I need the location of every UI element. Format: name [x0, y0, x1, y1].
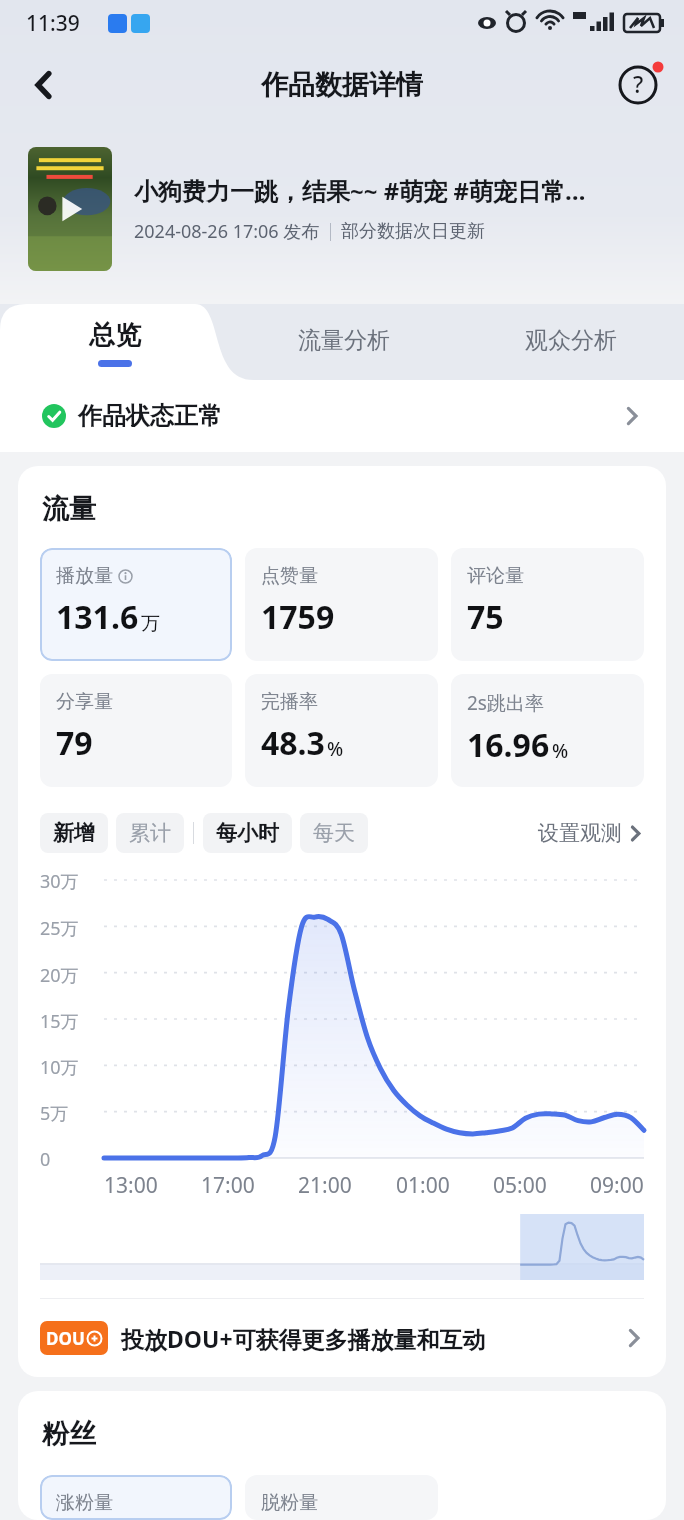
staticText: %	[327, 736, 344, 762]
staticText: 48.3	[261, 721, 325, 765]
staticText: 粉丝	[42, 1417, 96, 1451]
staticText: 21:00	[298, 1171, 352, 1200]
staticText: 设置观测	[538, 820, 622, 846]
button[interactable]: Back	[16, 57, 72, 113]
button[interactable]: 新增	[40, 813, 108, 853]
staticText: 新增	[53, 820, 95, 846]
button[interactable]: 分享量	[40, 674, 232, 787]
staticText: 20万	[40, 963, 79, 985]
staticText: 10万	[40, 1055, 79, 1077]
button[interactable]: 每小时	[203, 813, 292, 853]
staticText: 79	[56, 721, 93, 765]
staticText: DOU	[46, 1327, 85, 1350]
staticText: 播放量	[56, 564, 113, 588]
staticText: 脱粉量	[261, 1491, 318, 1515]
staticText: 每小时	[216, 820, 279, 846]
staticText: 11:39	[26, 9, 80, 38]
staticText: 观众分析	[525, 326, 617, 355]
staticText: 1759	[261, 595, 335, 639]
staticText: 17:00	[201, 1171, 255, 1200]
staticText: 25万	[40, 916, 79, 938]
button[interactable]: 2s跳出率	[451, 674, 644, 787]
button[interactable]: 完播率	[245, 674, 438, 787]
button[interactable]: 观众分析	[457, 294, 684, 380]
button[interactable]: 涨粉量	[40, 1475, 232, 1520]
button[interactable]: Help	[610, 57, 666, 113]
staticText: 5万	[40, 1101, 69, 1123]
staticText: 16.96	[467, 723, 550, 767]
staticText: 05:00	[493, 1171, 547, 1200]
staticText: 小狗费力一跳，结果~~ #萌宠 #萌宠日常…	[134, 174, 586, 207]
staticText: 13:00	[104, 1171, 158, 1200]
staticText: 75	[467, 595, 504, 639]
button[interactable]: 总览	[0, 294, 230, 380]
staticText: 完播率	[261, 690, 318, 714]
staticText: 涨粉量	[56, 1491, 113, 1515]
staticText: 131.6	[56, 595, 139, 639]
staticText: %	[552, 738, 569, 764]
staticText: 投放DOU+可获得更多播放量和互动	[121, 1323, 486, 1354]
button[interactable]: 累计	[116, 813, 184, 853]
staticText: 作品数据详情	[261, 68, 423, 102]
staticText: 01:00	[396, 1171, 450, 1200]
button[interactable]	[40, 1210, 644, 1280]
staticText: 分享量	[56, 690, 113, 714]
staticText: 30万	[40, 869, 79, 891]
button[interactable]: 每天	[300, 813, 368, 853]
staticText: 0	[40, 1147, 51, 1169]
staticText: 评论量	[467, 564, 524, 588]
staticText: 2s跳出率	[467, 690, 544, 716]
staticText: 每天	[313, 820, 355, 846]
staticText: 流量	[42, 492, 96, 526]
button[interactable]: DOU	[18, 1299, 666, 1377]
button[interactable]: 点赞量	[245, 548, 438, 661]
button[interactable]: 小狗费力一跳，结果~~ #萌宠 #萌宠日常…	[28, 124, 656, 294]
button[interactable]: 播放量	[40, 548, 232, 661]
button[interactable]: 流量分析	[230, 294, 457, 380]
staticText: 万	[141, 612, 160, 636]
staticText: 部分数据次日更新	[341, 220, 485, 243]
button[interactable]: 评论量	[451, 548, 644, 661]
button[interactable]: 脱粉量	[245, 1475, 438, 1520]
staticText: 流量分析	[298, 326, 390, 355]
button[interactable]: 设置观测	[538, 820, 644, 846]
staticText: 2024-08-26 17:06 发布	[134, 219, 320, 244]
staticText: 总览	[89, 319, 141, 352]
staticText: 15万	[40, 1009, 79, 1031]
staticText: 累计	[129, 820, 171, 846]
staticText: 09:00	[590, 1171, 644, 1200]
staticText: 点赞量	[261, 564, 318, 588]
staticText: ?	[633, 68, 644, 99]
staticText: 作品状态正常	[78, 401, 222, 431]
button[interactable]: 作品状态正常	[0, 380, 684, 452]
